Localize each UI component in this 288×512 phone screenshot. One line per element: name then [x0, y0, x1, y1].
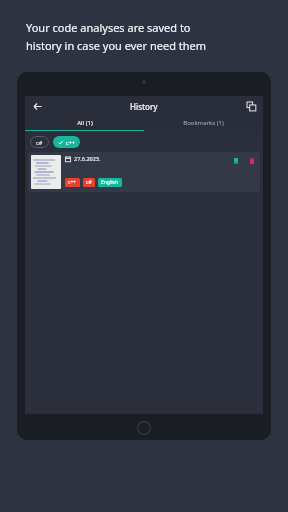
button[interactable]: c++	[53, 136, 80, 148]
button[interactable]: c#	[30, 136, 49, 148]
staticText: 27.6.2023.	[74, 155, 101, 162]
button[interactable]: 27.6.2023.	[28, 152, 260, 192]
staticText: c#	[36, 139, 43, 146]
staticText: English	[101, 179, 119, 186]
button[interactable]: Bookmarks (1)	[144, 116, 263, 130]
staticText: history in case you ever need them	[26, 38, 207, 53]
staticText: c++	[66, 139, 75, 146]
button[interactable]: Delete	[247, 156, 257, 166]
staticText: All (1)	[77, 119, 93, 127]
button[interactable]: Copy	[243, 98, 259, 114]
button[interactable]: c#	[83, 178, 95, 187]
staticText: Your code analyses are saved to	[26, 20, 191, 35]
button[interactable]: All (1)	[25, 116, 144, 130]
button[interactable]: Bookmark	[231, 156, 241, 166]
staticText: c++	[68, 179, 77, 186]
staticText: Bookmarks (1)	[183, 119, 224, 127]
staticText: History	[130, 101, 158, 112]
button[interactable]: c++	[65, 178, 80, 187]
staticText: c#	[86, 179, 92, 186]
button[interactable]: English	[98, 178, 122, 187]
button[interactable]: Back	[29, 98, 45, 114]
